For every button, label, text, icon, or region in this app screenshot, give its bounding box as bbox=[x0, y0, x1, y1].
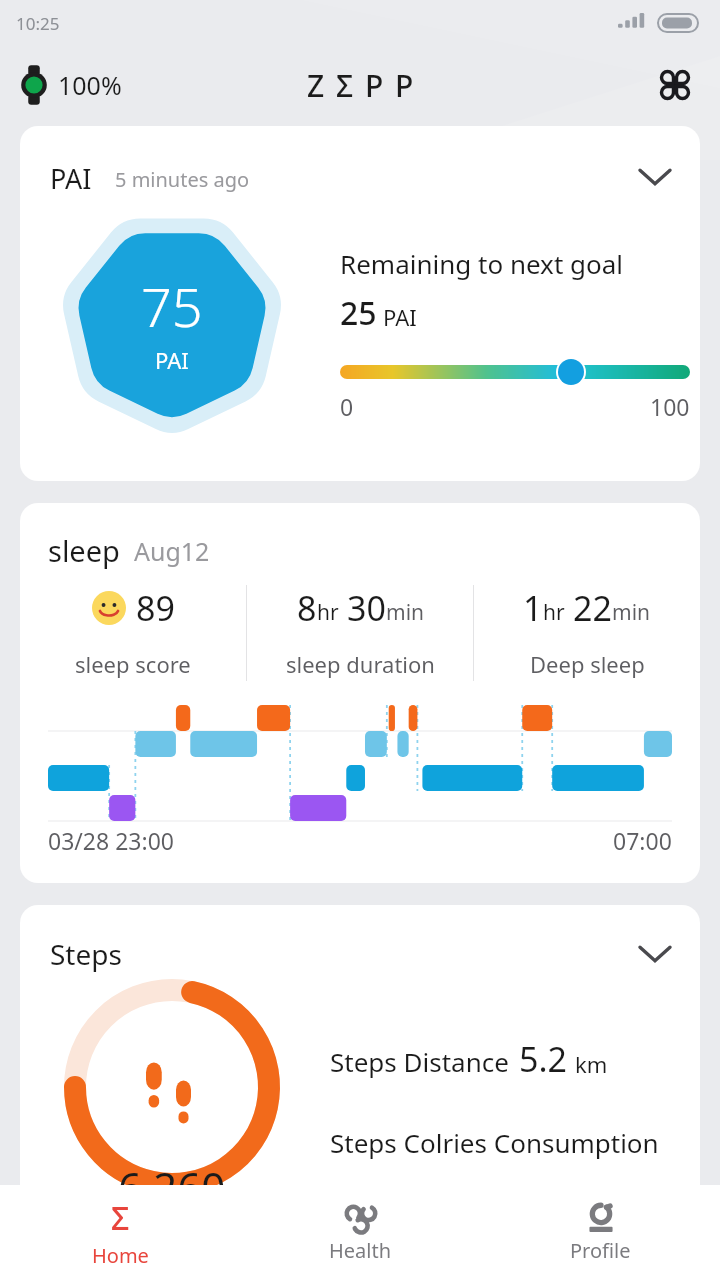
staticText: Home bbox=[92, 1242, 149, 1269]
staticText: Deep sleep bbox=[530, 649, 645, 679]
staticText: 75 bbox=[141, 269, 203, 343]
button[interactable]: Σ bbox=[0, 1185, 240, 1280]
staticText: Steps Colries Consumption bbox=[330, 1125, 659, 1160]
staticText: Steps bbox=[50, 935, 122, 973]
staticText: 07:00 bbox=[613, 825, 672, 856]
button[interactable]: PAI bbox=[20, 126, 700, 481]
button[interactable]: sleep bbox=[20, 503, 700, 883]
staticText: 8 bbox=[297, 585, 317, 631]
staticText: min bbox=[612, 598, 651, 627]
button[interactable]: Collapse Steps bbox=[628, 927, 682, 981]
staticText: 0 bbox=[340, 391, 354, 422]
button[interactable]: Steps bbox=[20, 905, 700, 1235]
staticText: Z bbox=[307, 65, 325, 106]
staticText: 10:25 bbox=[16, 12, 60, 35]
staticText: 100% bbox=[58, 68, 122, 102]
button[interactable]: Profile bbox=[480, 1185, 720, 1280]
staticText: PAI bbox=[155, 345, 189, 375]
staticText: Steps Distance bbox=[330, 1044, 509, 1079]
staticText: km bbox=[575, 1049, 608, 1079]
staticText: PAI bbox=[383, 302, 417, 332]
staticText: 5.2 bbox=[519, 1036, 568, 1082]
staticText: 30 bbox=[347, 585, 386, 631]
staticText: hr bbox=[317, 598, 339, 627]
staticText: 100 bbox=[650, 391, 690, 422]
button[interactable]: 100% bbox=[14, 65, 122, 105]
button[interactable]: Apps bbox=[652, 62, 698, 108]
staticText: P bbox=[395, 65, 414, 106]
staticText: 22 bbox=[573, 585, 612, 631]
staticText: 6,260 bbox=[118, 1158, 226, 1215]
button[interactable]: Collapse PAI bbox=[628, 150, 682, 204]
staticText: hr bbox=[543, 598, 565, 627]
button[interactable]: Health bbox=[240, 1185, 480, 1280]
staticText: Aug12 bbox=[134, 534, 210, 568]
staticText: Σ bbox=[111, 1196, 130, 1240]
staticText: 5 minutes ago bbox=[115, 166, 250, 193]
staticText: P bbox=[365, 65, 384, 106]
staticText: 1 bbox=[523, 585, 543, 631]
staticText: Remaining to next goal bbox=[340, 246, 624, 281]
staticText: PAI bbox=[50, 160, 92, 197]
staticText: 89 bbox=[136, 585, 175, 631]
staticText: Health bbox=[329, 1237, 392, 1264]
staticText: Σ bbox=[336, 65, 354, 106]
staticText: Profile bbox=[570, 1237, 631, 1264]
staticText: 25 bbox=[340, 291, 377, 335]
staticText: 03/28 23:00 bbox=[48, 825, 174, 856]
staticText: min bbox=[386, 598, 425, 627]
staticText: sleep duration bbox=[286, 649, 435, 679]
staticText: sleep bbox=[48, 531, 120, 570]
staticText: sleep score bbox=[75, 649, 191, 679]
